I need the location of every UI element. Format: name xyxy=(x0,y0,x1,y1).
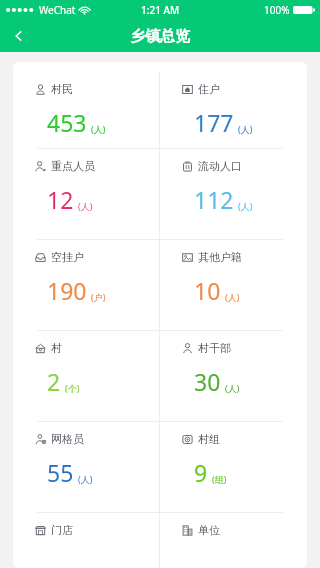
staticText: (人) xyxy=(78,200,93,212)
staticText: 网格员 xyxy=(51,432,84,446)
staticText: 重点人员 xyxy=(51,159,95,173)
staticText: 其他户籍 xyxy=(198,250,242,264)
staticText: 住户 xyxy=(198,82,220,96)
button[interactable]: 重点人员 xyxy=(13,149,159,239)
staticText: 村组 xyxy=(198,432,220,446)
staticText: (人) xyxy=(91,123,106,135)
staticText: 2 xyxy=(47,366,61,397)
button[interactable]: 单位 xyxy=(160,513,307,568)
button[interactable]: 村干部 xyxy=(160,331,307,421)
staticText: 12 xyxy=(47,184,74,215)
staticText: 10 xyxy=(194,275,221,306)
staticText: 9 xyxy=(194,457,208,488)
staticText: 112 xyxy=(194,184,234,215)
staticText: 453 xyxy=(47,107,87,138)
staticText: 55 xyxy=(47,457,74,488)
button[interactable]: 门店 xyxy=(13,513,159,568)
staticText: (人) xyxy=(238,123,253,135)
staticText: 乡镇总览 xyxy=(130,27,190,46)
staticText: (人) xyxy=(225,382,240,394)
staticText: (人) xyxy=(225,291,240,303)
staticText: (人) xyxy=(78,473,93,485)
button[interactable]: 村民 xyxy=(13,72,159,148)
staticText: 村民 xyxy=(51,82,73,96)
staticText: 流动人口 xyxy=(198,159,242,173)
staticText: 单位 xyxy=(198,523,220,537)
staticText: WeChat xyxy=(39,3,76,17)
button[interactable]: 其他户籍 xyxy=(160,240,307,330)
staticText: (户) xyxy=(91,291,106,303)
button[interactable]: 网格员 xyxy=(13,422,159,512)
staticText: 村干部 xyxy=(198,341,231,355)
button[interactable]: 空挂户 xyxy=(13,240,159,330)
staticText: 村 xyxy=(51,341,62,355)
staticText: 177 xyxy=(194,107,234,138)
staticText: 30 xyxy=(194,366,221,397)
staticText: 门店 xyxy=(51,523,73,537)
staticText: (组) xyxy=(212,473,227,485)
button[interactable]: 流动人口 xyxy=(160,149,307,239)
staticText: 1:21 AM xyxy=(141,3,180,17)
button[interactable]: 村 xyxy=(13,331,159,421)
staticText: (个) xyxy=(65,382,80,394)
button[interactable]: 住户 xyxy=(160,72,307,148)
staticText: 100% xyxy=(264,3,290,17)
staticText: 190 xyxy=(47,275,87,306)
staticText: 空挂户 xyxy=(51,250,84,264)
button[interactable]: 村组 xyxy=(160,422,307,512)
staticText: (人) xyxy=(238,200,253,212)
button[interactable]: Back xyxy=(0,20,38,52)
